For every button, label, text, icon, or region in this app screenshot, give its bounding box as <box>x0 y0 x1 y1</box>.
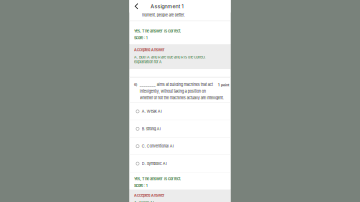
staticText: Assignment 1 <box>150 3 183 9</box>
staticText: Yes, The answer is correct. <box>134 29 181 33</box>
staticText: whether or not the machines actually are… <box>140 96 224 100</box>
staticText: D. Symbolic AI <box>142 161 167 166</box>
staticText: 6) <box>134 82 137 87</box>
staticText: Score : 1 <box>134 36 148 40</box>
staticText: A. Weak AI <box>134 200 154 202</box>
staticText: A. Both A and R are true and R is the co… <box>134 55 205 64</box>
staticText: B. Strong AI <box>142 126 161 131</box>
button[interactable]: C. Conventional AI <box>129 138 230 155</box>
staticText: intelligently, without taking a position… <box>140 89 206 94</box>
staticText: D. It is the study of how to make comput… <box>142 0 201 17</box>
staticText: ________ aims at building machines that … <box>140 82 213 87</box>
button[interactable]: B. Strong AI <box>129 120 230 138</box>
staticText: Accepted Answer <box>134 48 165 52</box>
button[interactable]: Back <box>129 0 142 12</box>
staticText: A. Weak AI <box>142 109 162 114</box>
staticText: C. Conventional AI <box>142 144 174 148</box>
staticText: 1 point <box>218 83 229 87</box>
staticText: Yes, The answer is correct. <box>134 176 181 181</box>
staticText: Accepted Answer <box>134 193 165 198</box>
button[interactable]: D. Symbolic AI <box>129 155 230 172</box>
staticText: Score : 1 <box>134 183 148 188</box>
button[interactable]: A. Weak AI <box>129 103 230 120</box>
